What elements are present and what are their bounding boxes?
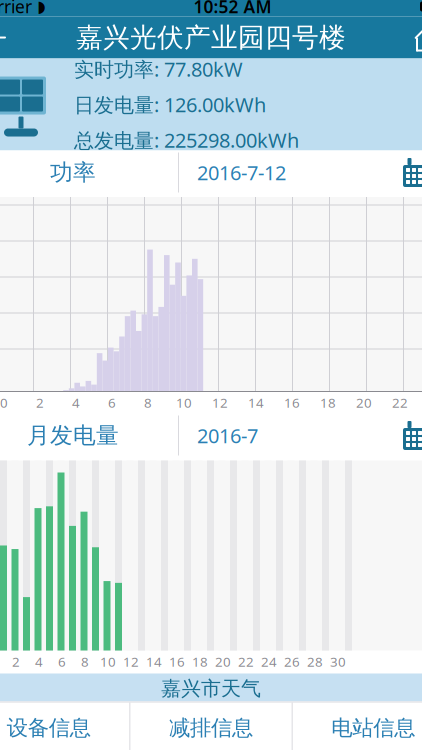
staticText: 2 <box>36 394 44 411</box>
staticText: 8 <box>144 394 152 411</box>
button[interactable]: 2016-7 <box>179 413 422 457</box>
staticText: 6 <box>108 394 116 411</box>
staticText: 功率 <box>50 159 96 186</box>
button[interactable]: 电站信息 <box>293 702 422 750</box>
staticText: 16 <box>169 653 185 670</box>
staticText: 月发电量 <box>27 422 119 449</box>
button[interactable]: 2016-7-12 <box>179 150 422 194</box>
staticText: 日发电量: 126.00kWh <box>74 91 266 118</box>
staticText: 20 <box>356 394 372 411</box>
staticText: 总发电量: 225298.00kWh <box>74 127 299 153</box>
staticText: 26 <box>284 653 300 670</box>
staticText: 4 <box>35 653 43 670</box>
staticText: 18 <box>192 653 208 670</box>
staticText: 电站信息 <box>331 715 415 741</box>
staticText: 22 <box>238 653 254 670</box>
button[interactable]: 功率 <box>0 150 178 194</box>
staticText: 嘉兴光伏产业园四号楼 <box>76 21 346 54</box>
staticText: 10 <box>176 394 192 411</box>
staticText: 18 <box>320 394 336 411</box>
staticText: 16 <box>284 394 300 411</box>
staticText: 10:52 AM <box>193 0 271 18</box>
staticText: 20 <box>215 653 231 670</box>
staticText: 14 <box>248 394 264 411</box>
staticText: ◗ <box>37 0 45 16</box>
button[interactable]: 设备信息 <box>0 702 129 750</box>
staticText: 10 <box>100 653 116 670</box>
staticText: 24 <box>261 653 277 670</box>
staticText: 2 <box>12 653 20 670</box>
staticText: 设备信息 <box>7 715 91 741</box>
staticText: 减排信息 <box>169 715 253 741</box>
staticText: 嘉兴市天气 <box>161 676 261 701</box>
button[interactable]: 减排信息 <box>130 702 292 750</box>
staticText: 14 <box>146 653 162 670</box>
staticText: 8 <box>81 653 89 670</box>
button[interactable]: Home <box>400 16 422 58</box>
staticText: 4 <box>72 394 80 411</box>
staticText: 2016-7-12 <box>197 159 286 186</box>
staticText: 0 <box>0 394 8 411</box>
staticText: 12 <box>123 653 139 670</box>
staticText: 2016-7 <box>197 422 258 449</box>
staticText: 实时功率: 77.80kW <box>74 56 243 82</box>
staticText: 12 <box>212 394 228 411</box>
staticText: 28 <box>307 653 323 670</box>
button[interactable]: 月发电量 <box>0 413 178 457</box>
staticText: 30 <box>330 653 346 670</box>
staticText: 6 <box>58 653 66 670</box>
staticText: Carrier <box>0 0 32 18</box>
staticText: 22 <box>392 394 408 411</box>
button[interactable]: Back <box>0 16 22 58</box>
